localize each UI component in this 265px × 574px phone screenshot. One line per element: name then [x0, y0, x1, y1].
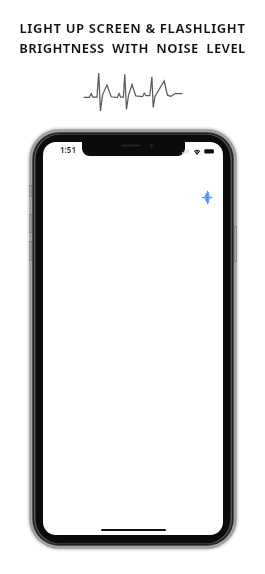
- staticText: 1:51: [60, 144, 76, 155]
- button[interactable]: Noise level: [196, 186, 218, 208]
- staticText: BRIGHTNESS WITH NOISE LEVEL: [19, 39, 246, 57]
- staticText: LIGHT UP SCREEN & FLASHLIGHT: [19, 19, 246, 37]
